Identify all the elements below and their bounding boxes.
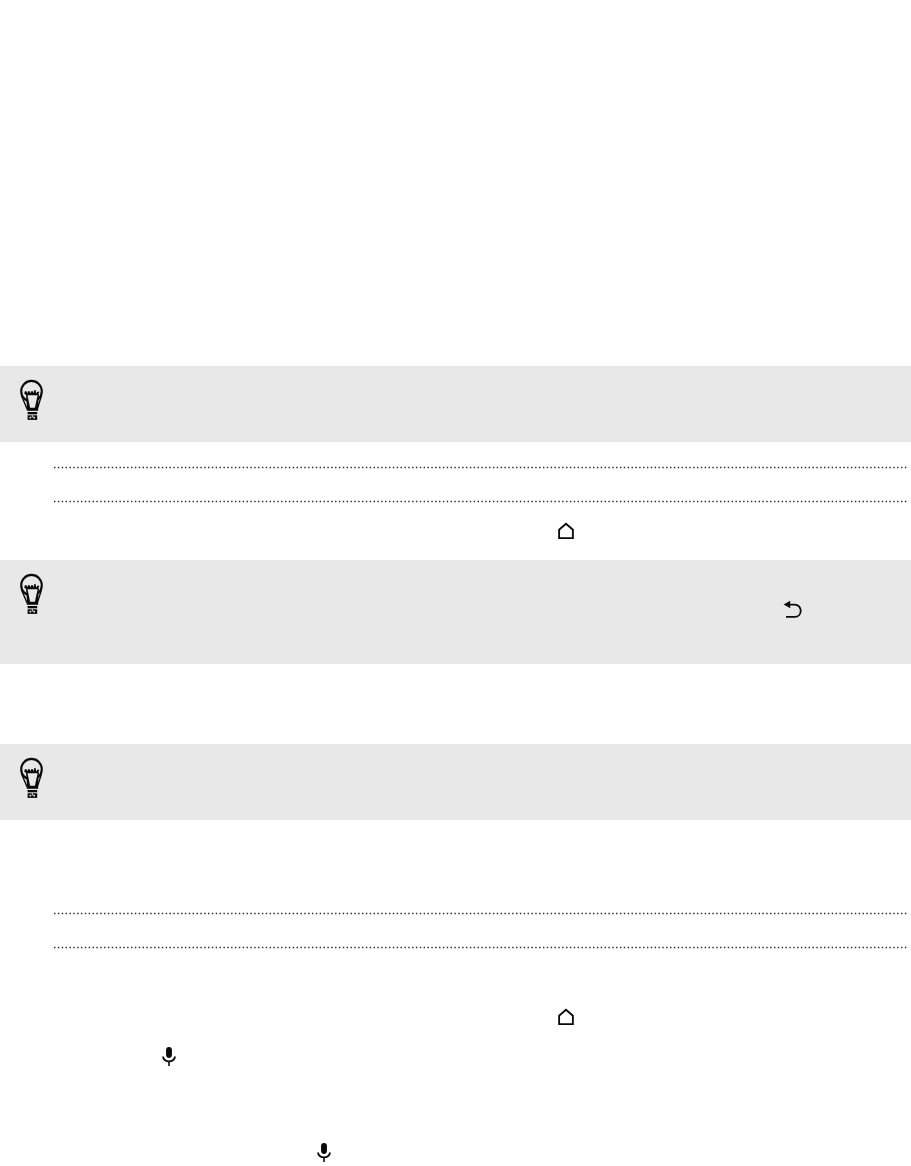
button[interactable]: Tip [0, 560, 911, 664]
button[interactable]: Back [776, 593, 810, 625]
button[interactable]: Tip [0, 366, 911, 442]
button[interactable]: Voice input [310, 1138, 338, 1166]
button[interactable]: Voice input [155, 1042, 183, 1070]
button[interactable]: Home [551, 516, 581, 546]
button[interactable]: Home [551, 1002, 581, 1032]
button[interactable]: Tip [0, 744, 911, 820]
